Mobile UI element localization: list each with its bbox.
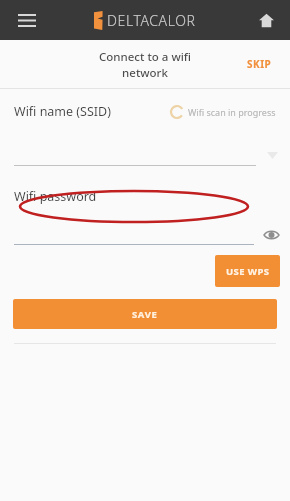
button[interactable]: SAVE [13, 299, 277, 329]
button[interactable]: SKIP [239, 51, 280, 77]
button[interactable]: Menu [12, 5, 42, 35]
staticText: USE WPS [226, 265, 270, 278]
staticText: Wifi password [14, 188, 97, 205]
staticText: Wifi name (SSID) [14, 103, 111, 120]
staticText: Connect to a wifi network [80, 49, 210, 80]
staticText: Wifi scan in progress [188, 106, 276, 118]
button[interactable]: Home [252, 6, 280, 34]
button[interactable]: Show password [260, 225, 282, 245]
button[interactable]: USE WPS [215, 255, 280, 287]
staticText: SKIP [247, 57, 272, 71]
button[interactable]: Show wifi list [267, 152, 278, 159]
staticText: SAVE [132, 308, 158, 321]
staticText: DELTACALOR [107, 11, 196, 30]
